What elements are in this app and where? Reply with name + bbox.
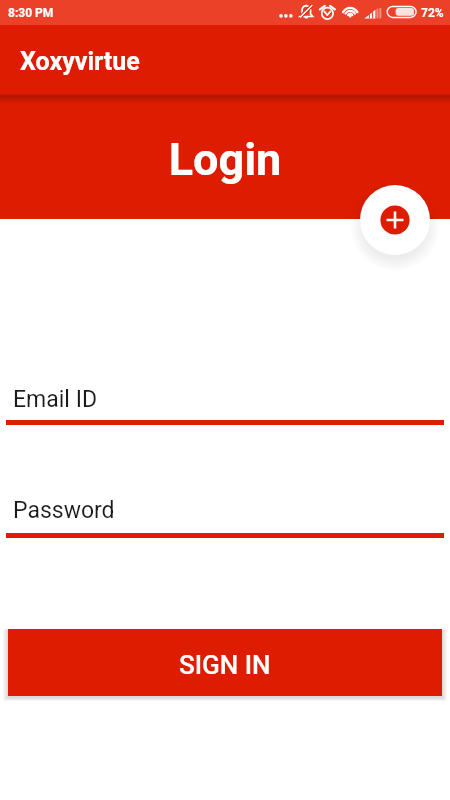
staticText: 8:30 PM [8, 6, 54, 20]
button[interactable]: Add [360, 185, 430, 255]
staticText: Login [0, 133, 450, 186]
staticText: Xoxyvirtue [20, 47, 140, 76]
staticText: SIGN IN [179, 650, 271, 680]
staticText: 72% [421, 6, 444, 20]
staticText: Password [13, 497, 115, 524]
button[interactable] [6, 380, 444, 425]
button[interactable] [6, 491, 444, 538]
staticText: Email ID [13, 386, 97, 413]
button[interactable]: SIGN IN [8, 629, 442, 696]
